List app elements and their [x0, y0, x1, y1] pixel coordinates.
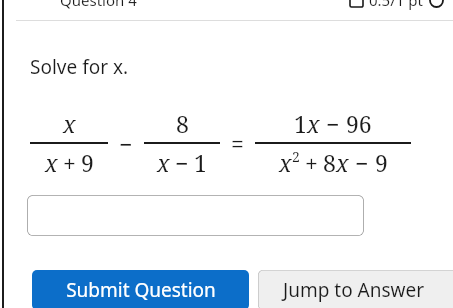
staticText: x	[63, 108, 76, 139]
staticText: Solve for x.	[30, 54, 129, 80]
staticText: 9	[81, 147, 94, 178]
staticText: =	[231, 128, 244, 159]
staticText: 8	[323, 147, 336, 178]
staticText: 9	[375, 147, 388, 178]
staticText: +	[305, 147, 318, 178]
button[interactable]: Submit Question	[32, 270, 249, 308]
staticText: x	[45, 147, 58, 178]
staticText: x	[336, 147, 349, 178]
button[interactable]	[27, 195, 364, 236]
staticText: 2	[292, 147, 300, 166]
staticText: +	[63, 147, 76, 178]
staticText: 1	[294, 108, 307, 139]
staticText: −	[175, 147, 189, 178]
staticText: −	[326, 108, 340, 139]
staticText: Jump to Answer	[283, 277, 425, 303]
staticText: −	[119, 128, 133, 159]
staticText: x	[279, 147, 292, 178]
staticText: x	[157, 147, 170, 178]
button[interactable]: Jump to Answer	[258, 270, 453, 308]
staticText: 0.5/1 pt	[369, 0, 423, 10]
staticText: −	[355, 147, 369, 178]
staticText: 1	[194, 147, 207, 178]
staticText: 96	[346, 108, 372, 139]
staticText: x	[307, 108, 320, 139]
staticText: Submit Question	[66, 277, 216, 303]
staticText: 8	[176, 108, 189, 139]
staticText: Question 4	[60, 0, 137, 10]
